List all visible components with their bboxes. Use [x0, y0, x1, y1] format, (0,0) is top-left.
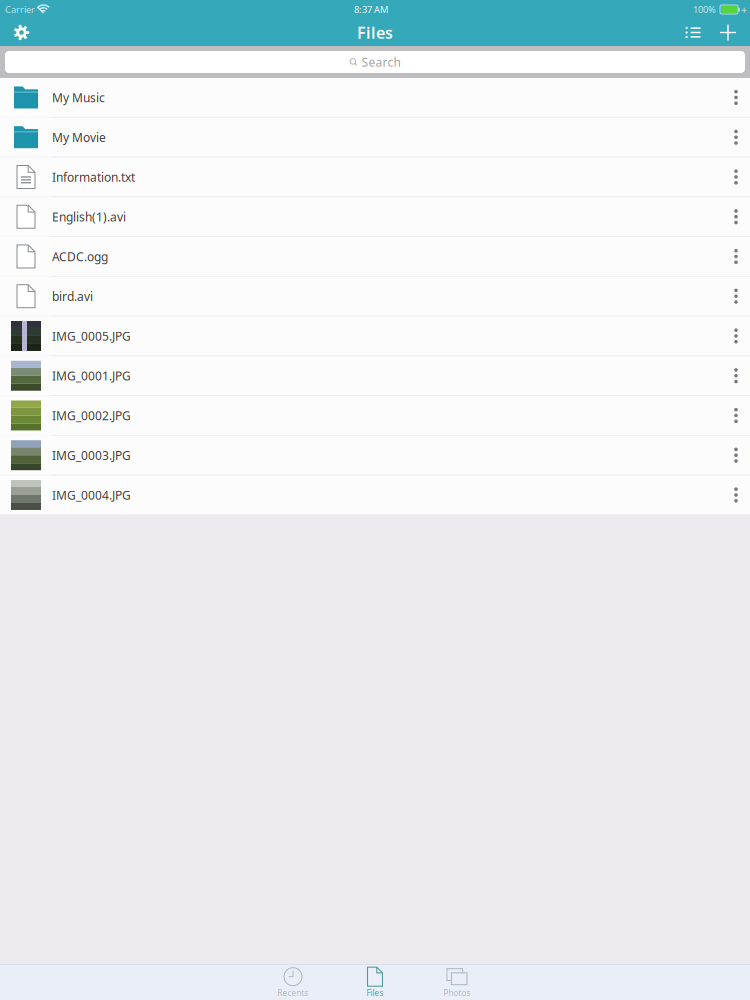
button[interactable]: Photos [416, 966, 498, 999]
staticText: IMG_0002.JPG [52, 407, 131, 423]
staticText: IMG_0004.JPG [52, 487, 131, 503]
staticText: IMG_0005.JPG [52, 328, 131, 344]
staticText: My Music [52, 89, 105, 105]
button[interactable]: bird.avi [0, 277, 750, 316]
staticText: Search [361, 54, 400, 70]
button[interactable]: Add [710, 19, 746, 46]
staticText: Files [366, 988, 383, 998]
staticText: 100% [693, 3, 716, 16]
staticText: Information.txt [52, 169, 135, 185]
button[interactable]: Settings [0, 19, 43, 46]
staticText: 8:37 AM [354, 3, 388, 16]
button[interactable]: IMG_0005.JPG [0, 316, 750, 355]
button[interactable]: Search [0, 51, 750, 73]
staticText: English(1).avi [52, 209, 126, 225]
button[interactable]: ACDC.ogg [0, 237, 750, 276]
staticText: My Movie [52, 129, 106, 145]
staticText: IMG_0001.JPG [52, 368, 131, 384]
staticText: Recents [277, 988, 308, 998]
button[interactable]: IMG_0004.JPG [0, 475, 750, 514]
staticText: IMG_0003.JPG [52, 447, 131, 463]
staticText: Carrier [5, 3, 35, 16]
button[interactable]: IMG_0002.JPG [0, 396, 750, 435]
button[interactable]: English(1).avi [0, 197, 750, 236]
button[interactable]: IMG_0003.JPG [0, 436, 750, 475]
button[interactable]: Recents [252, 966, 334, 999]
staticText: ACDC.ogg [52, 248, 108, 264]
staticText: bird.avi [52, 288, 93, 304]
button[interactable]: My Movie [0, 118, 750, 157]
button[interactable]: My Music [0, 78, 750, 117]
staticText: Files [357, 22, 393, 43]
button[interactable]: Sort [676, 19, 710, 46]
staticText: + [741, 2, 747, 17]
button[interactable]: Files [334, 966, 416, 999]
staticText: Photos [443, 988, 470, 998]
button[interactable]: IMG_0001.JPG [0, 356, 750, 395]
button[interactable]: Information.txt [0, 157, 750, 196]
